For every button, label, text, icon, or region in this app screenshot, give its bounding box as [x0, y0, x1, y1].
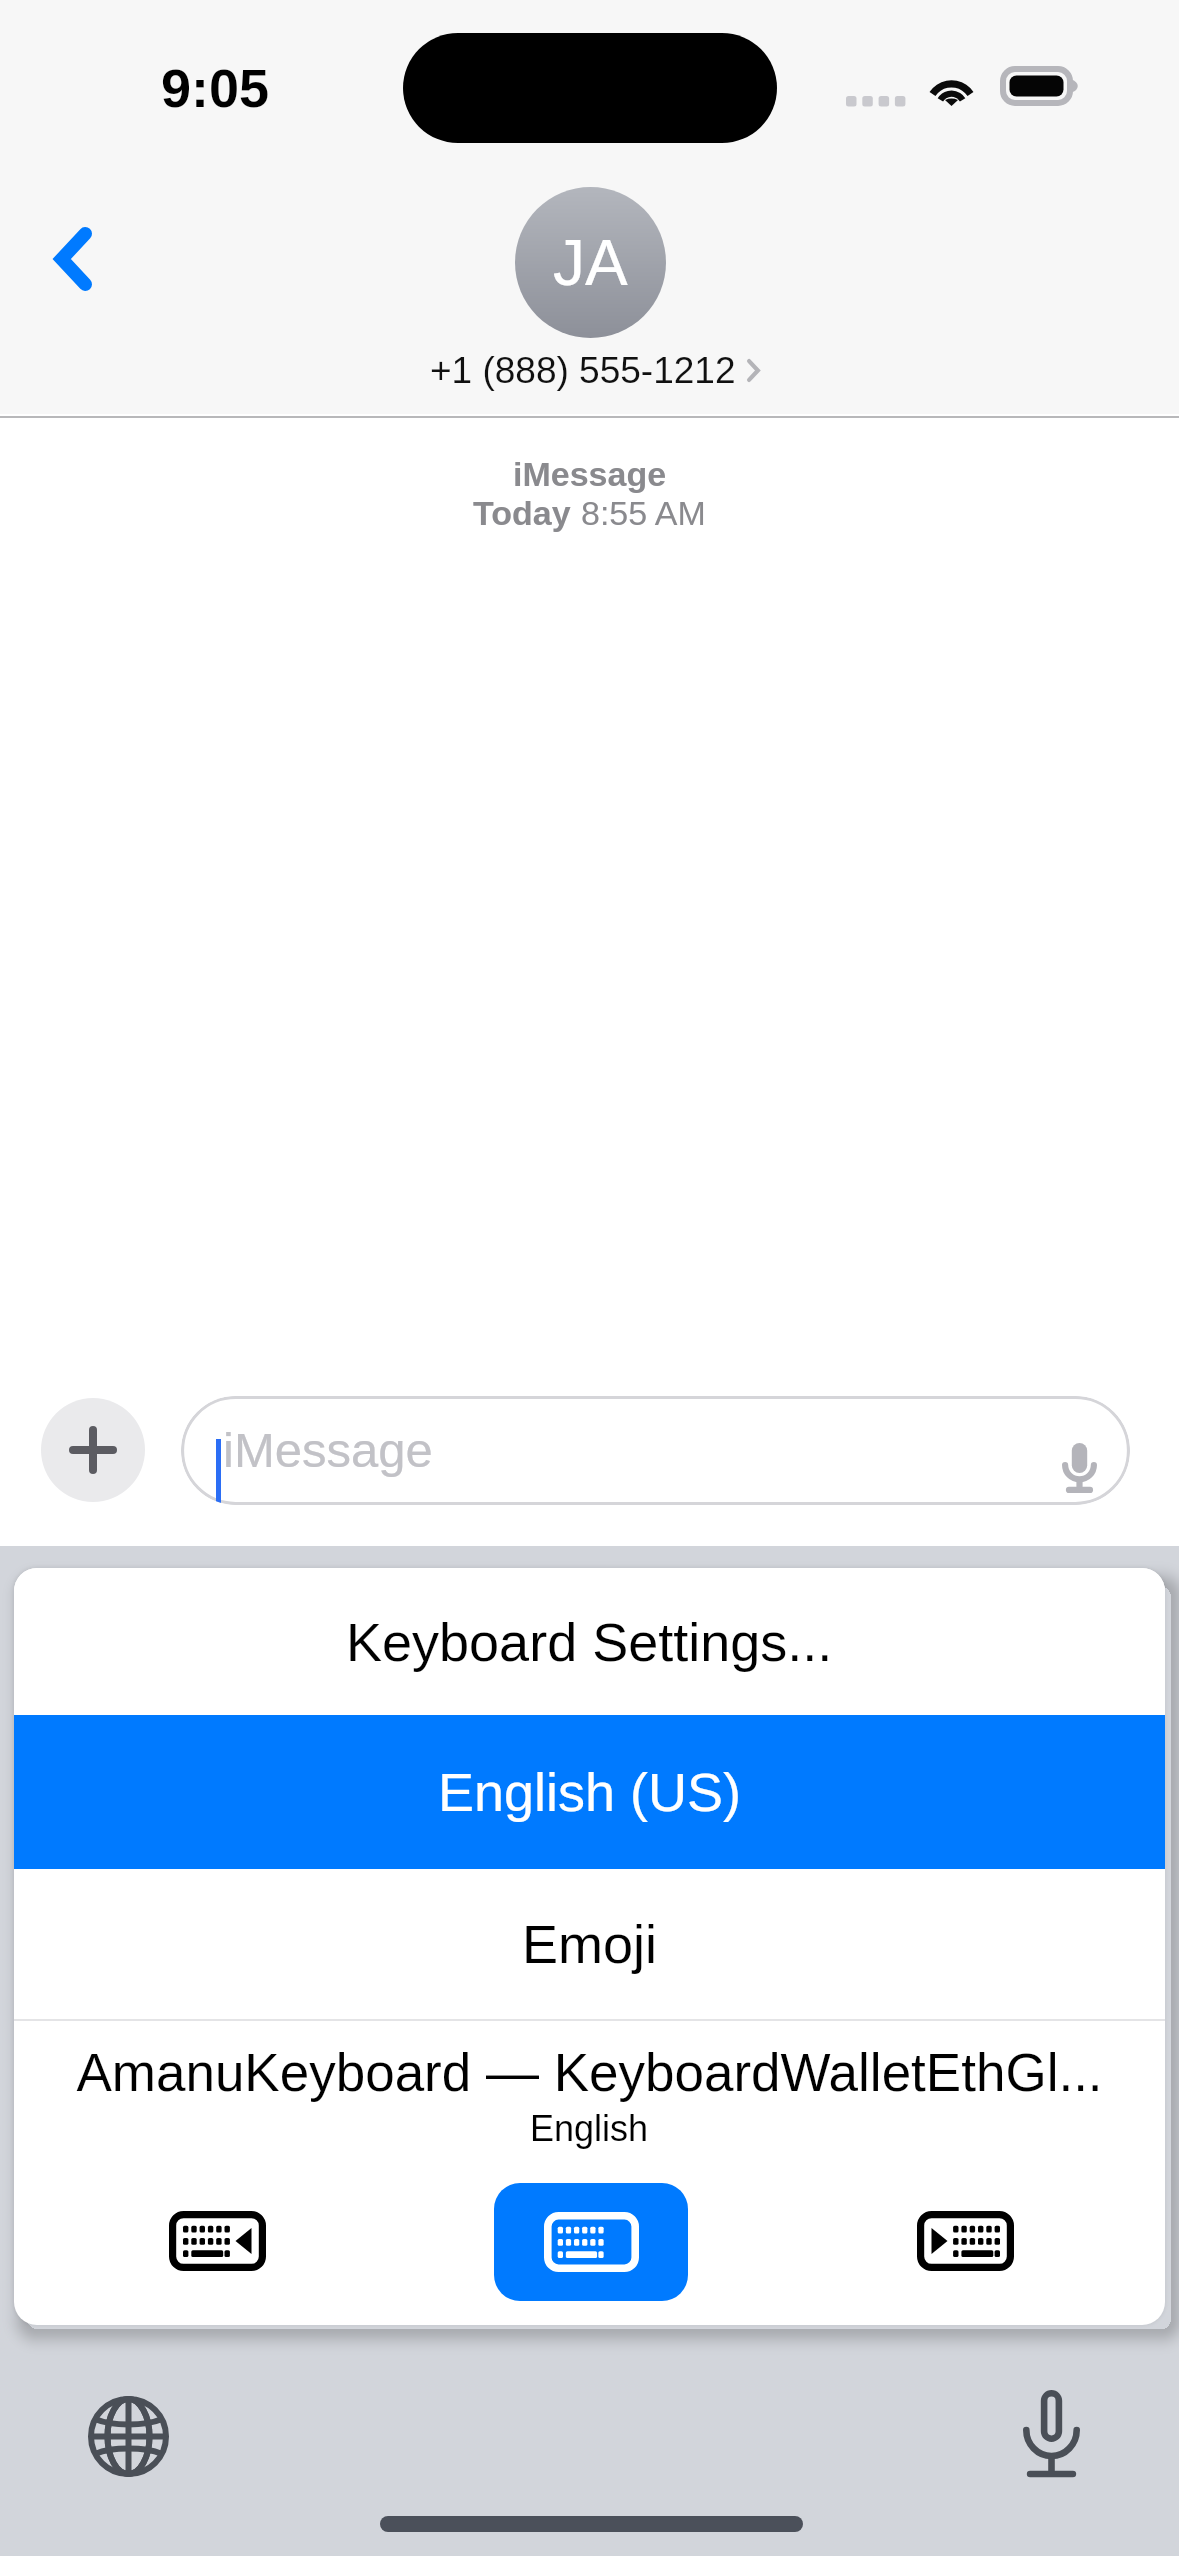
staticText: JA: [553, 227, 628, 299]
staticText: 8:55 AM: [581, 494, 706, 532]
button[interactable]: Keyboard Settings...: [14, 1568, 1165, 1715]
button[interactable]: +1 (888) 555-1212: [430, 350, 760, 391]
button[interactable]: JA: [515, 187, 666, 338]
button[interactable]: Dictation: [1021, 2385, 1081, 2480]
button[interactable]: Emoji: [14, 1869, 1165, 2019]
staticText: AmanuKeyboard — KeyboardWalletEthGl...: [76, 2043, 1103, 2102]
staticText: 9:05: [161, 58, 270, 118]
button[interactable]: Previous keyboard: [155, 2195, 280, 2287]
button[interactable]: Back: [12, 192, 128, 322]
button[interactable]: iMessage: [181, 1396, 1130, 1505]
staticText: English (US): [438, 1762, 742, 1822]
staticText: iMessage: [513, 455, 667, 493]
button[interactable]: AmanuKeyboard — KeyboardWalletEthGl...: [14, 2021, 1165, 2148]
staticText: Keyboard Settings...: [346, 1612, 833, 1672]
button[interactable]: Keyboard: [494, 2183, 688, 2301]
button[interactable]: Next keyboard: [903, 2195, 1028, 2287]
staticText: English: [530, 2108, 649, 2148]
button[interactable]: Dictate: [1026, 1430, 1130, 1505]
staticText: Today: [473, 494, 581, 532]
staticText: Emoji: [522, 1914, 658, 1974]
button[interactable]: Add attachment: [41, 1398, 145, 1502]
staticText: +1 (888) 555-1212: [430, 350, 736, 391]
button[interactable]: Change keyboard language: [67, 2375, 189, 2497]
button[interactable]: English (US): [14, 1715, 1165, 1869]
staticText: iMessage: [223, 1423, 433, 1478]
